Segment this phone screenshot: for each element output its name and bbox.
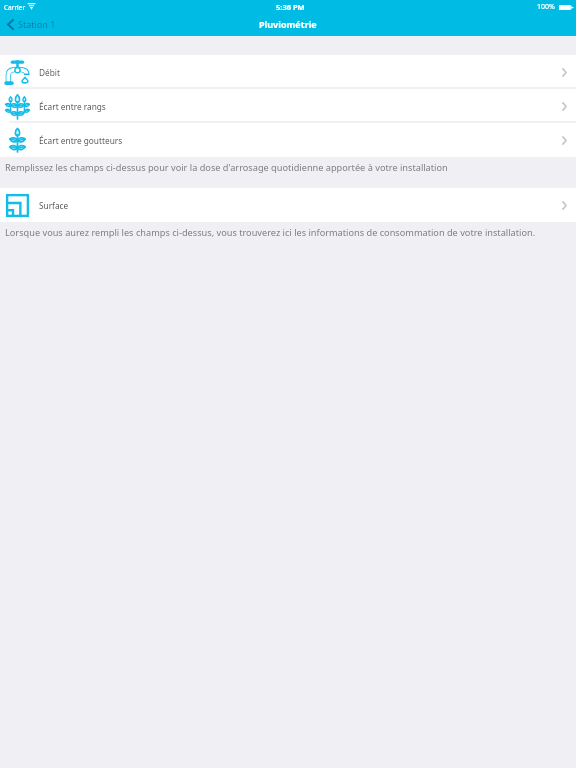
button[interactable]: Surface [0, 188, 576, 222]
staticText: Pluviométrie [259, 18, 317, 30]
button[interactable]: Station 1 [0, 17, 66, 31]
staticText: Surface [39, 200, 69, 211]
staticText: Station 1 [18, 18, 56, 30]
button[interactable]: Débit [0, 55, 576, 89]
staticText: Lorsque vous aurez rempli les champs ci-… [5, 226, 536, 239]
staticText: Écart entre rangs [39, 101, 106, 112]
staticText: Écart entre goutteurs [39, 135, 123, 146]
staticText: Carrier [4, 3, 26, 12]
staticText: Débit [39, 67, 60, 78]
staticText: Remplissez les champs ci-dessus pour voi… [5, 161, 448, 174]
staticText: 100% [537, 2, 555, 12]
button[interactable]: Écart entre goutteurs [0, 123, 576, 157]
button[interactable]: Écart entre rangs [0, 89, 576, 123]
staticText: 5:36 PM [276, 2, 305, 12]
